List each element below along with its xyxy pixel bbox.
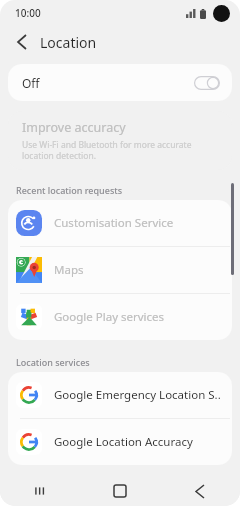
button[interactable]: Google Play services — [8, 294, 232, 340]
button[interactable]: Recents — [0, 476, 80, 506]
staticText: Recent location requests — [16, 184, 123, 196]
button[interactable]: Back — [160, 476, 240, 506]
button[interactable]: Google Emergency Location S.. — [8, 372, 232, 418]
staticText: Maps — [54, 262, 84, 278]
staticText: Off — [22, 75, 40, 91]
staticText: Google Location Accuracy — [54, 434, 193, 450]
staticText: 10:00 — [15, 6, 41, 20]
staticText: Location services — [16, 356, 90, 368]
staticText: Use Wi-Fi and Bluetooth for more accurat… — [22, 139, 218, 161]
button[interactable]: Back — [10, 30, 34, 54]
button[interactable]: Google Location Accuracy — [8, 419, 232, 465]
button[interactable]: Customisation Service — [8, 200, 232, 246]
staticText: Location — [40, 33, 97, 52]
button[interactable]: Home — [80, 476, 160, 506]
staticText: Google Play services — [54, 309, 165, 325]
button[interactable]: Improve accuracy — [8, 111, 232, 170]
staticText: Improve accuracy — [22, 119, 126, 136]
staticText: Customisation Service — [54, 215, 174, 231]
staticText: Google Emergency Location S.. — [54, 387, 221, 403]
button[interactable]: Off — [8, 64, 232, 101]
button[interactable]: Maps — [8, 247, 232, 293]
